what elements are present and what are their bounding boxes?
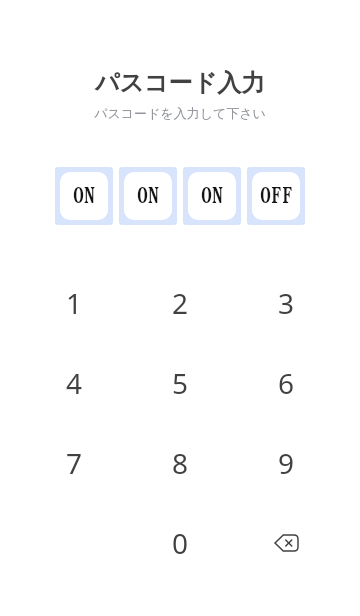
button[interactable]: 2 xyxy=(127,263,233,343)
staticText: 3 xyxy=(278,284,295,322)
button[interactable]: 0 xyxy=(127,503,233,583)
staticText: パスコードを入力して下さい xyxy=(0,105,360,121)
button[interactable]: ON xyxy=(119,167,177,225)
button[interactable]: Backspace xyxy=(233,503,339,583)
staticText: ON xyxy=(73,184,95,206)
button[interactable]: 7 xyxy=(21,423,127,503)
staticText: ON xyxy=(201,184,223,206)
staticText: 6 xyxy=(278,364,295,402)
button[interactable]: ON xyxy=(183,167,241,225)
staticText: 1 xyxy=(66,284,83,322)
staticText: 0 xyxy=(172,524,189,562)
button[interactable]: 3 xyxy=(233,263,339,343)
button[interactable]: OFF xyxy=(247,167,305,225)
staticText: 7 xyxy=(66,444,83,482)
button[interactable]: 5 xyxy=(127,343,233,423)
staticText: 2 xyxy=(172,284,189,322)
staticText: 8 xyxy=(172,444,189,482)
staticText: OFF xyxy=(260,184,293,206)
staticText: ON xyxy=(137,184,159,206)
staticText: 4 xyxy=(66,364,83,402)
staticText: 5 xyxy=(172,364,189,402)
staticText: 9 xyxy=(278,444,295,482)
button[interactable]: ON xyxy=(55,167,113,225)
button[interactable]: 4 xyxy=(21,343,127,423)
button[interactable]: 8 xyxy=(127,423,233,503)
button[interactable]: 6 xyxy=(233,343,339,423)
button[interactable]: 1 xyxy=(21,263,127,343)
staticText: パスコード入力 xyxy=(0,68,360,98)
button[interactable]: 9 xyxy=(233,423,339,503)
